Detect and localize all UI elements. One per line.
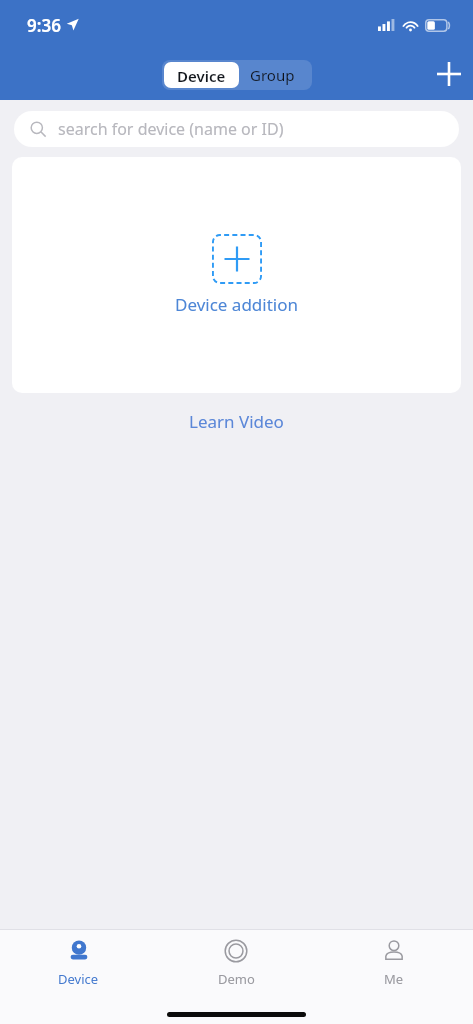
button[interactable]: Device — [164, 62, 239, 88]
staticText: Device — [58, 970, 99, 988]
staticText: 9:36 — [27, 14, 61, 37]
staticText: Demo — [218, 970, 255, 988]
staticText: Me — [384, 970, 404, 988]
button[interactable]: Device — [0, 930, 157, 988]
staticText: Device addition — [175, 293, 298, 316]
staticText: Group — [250, 65, 295, 85]
staticText: Learn Video — [189, 410, 284, 433]
button[interactable]: Group — [241, 60, 312, 90]
button[interactable]: search for device (name or ID) — [14, 111, 459, 147]
staticText: Device — [177, 66, 226, 84]
button[interactable]: Learn Video — [0, 405, 473, 437]
button[interactable]: Device addition — [169, 228, 304, 322]
staticText: search for device (name or ID) — [58, 118, 284, 140]
button[interactable]: Demo — [157, 930, 315, 988]
button[interactable]: Add device — [425, 50, 473, 98]
button[interactable]: Me — [315, 930, 473, 988]
